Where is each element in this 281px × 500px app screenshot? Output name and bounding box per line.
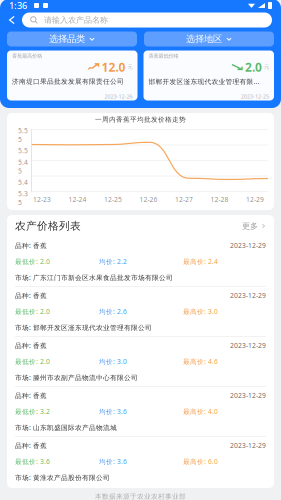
- staticText: 5.55: [18, 126, 28, 144]
- staticText: 均价: 3.6: [99, 407, 127, 416]
- staticText: 均价: 3.0: [99, 357, 127, 366]
- button[interactable]: 品种: 香蕉: [7, 287, 274, 336]
- staticText: 市场: 山东凯盛国际农产品物流城: [15, 423, 117, 432]
- staticText: 选择地区: [186, 33, 222, 45]
- staticText: 最低价: 2.0: [15, 357, 50, 366]
- staticText: 选择品类: [49, 33, 85, 45]
- staticText: 12-25: [104, 195, 122, 204]
- staticText: 邯郸开发区滏东现代农业管理有限公司: [148, 77, 261, 86]
- staticText: 本数据来源于农业农村事业部: [95, 492, 186, 500]
- staticText: 2.0: [245, 59, 262, 75]
- button[interactable]: 香蕉最高价格: [7, 50, 137, 100]
- staticText: 最高价: 6.0: [183, 457, 218, 466]
- staticText: 2023-12-29: [230, 241, 266, 250]
- staticText: 最高价: 3.0: [183, 307, 218, 316]
- button[interactable]: 选择地区: [144, 31, 274, 46]
- staticText: 12-29: [246, 195, 264, 204]
- button[interactable]: 香蕉最低价格: [143, 50, 274, 100]
- staticText: 元: [127, 64, 132, 70]
- staticText: 最高价: 4.0: [183, 407, 218, 416]
- staticText: 市场: 邯郸开发区滏东现代农业管理有限公司: [15, 323, 152, 332]
- staticText: 最低价: 2.0: [15, 257, 50, 266]
- staticText: 最低价: 3.2: [15, 407, 50, 416]
- staticText: 最高价: 4.6: [183, 357, 218, 366]
- staticText: 均价: 3.6: [99, 457, 127, 466]
- staticText: 2023-12-29: [230, 291, 266, 300]
- staticText: 12-26: [139, 195, 157, 204]
- staticText: 2023-12-29: [230, 441, 266, 450]
- button[interactable]: 品种: 香蕉: [7, 337, 274, 386]
- staticText: 最高价: 2.4: [183, 257, 218, 266]
- staticText: 品种: 香蕉: [15, 241, 47, 250]
- staticText: 市场: 广东江门市新会区水果食品批发市场有限公司: [15, 273, 173, 282]
- staticText: 品种: 香蕉: [15, 441, 47, 450]
- staticText: 最低价: 3.6: [15, 457, 50, 466]
- staticText: 品种: 香蕉: [15, 391, 47, 400]
- staticText: 香蕉最低价格: [148, 53, 178, 59]
- staticText: 香蕉最高价格: [12, 53, 42, 59]
- staticText: 12-24: [68, 195, 86, 204]
- button[interactable]: 返回: [2, 12, 22, 27]
- staticText: 12-23: [33, 195, 51, 204]
- staticText: 5.35: [18, 189, 28, 207]
- button[interactable]: 选择品类: [7, 31, 137, 46]
- staticText: 5.5: [18, 146, 28, 155]
- staticText: 一周内香蕉平均批发价格走势: [95, 115, 186, 124]
- staticText: 农产价格列表: [15, 219, 81, 232]
- staticText: 5.4: [18, 178, 28, 187]
- staticText: 元: [264, 64, 269, 70]
- staticText: 品种: 香蕉: [15, 291, 47, 300]
- staticText: 市场: 滕州市农副产品物流中心有限公司: [15, 373, 138, 382]
- staticText: 更多: [242, 221, 258, 231]
- staticText: 1:36: [9, 0, 27, 12]
- staticText: 品种: 香蕉: [15, 341, 47, 350]
- staticText: 12-28: [210, 195, 228, 204]
- staticText: 2023-12-26: [104, 93, 132, 100]
- staticText: 2023-12-29: [230, 341, 266, 350]
- button[interactable]: 品种: 香蕉: [7, 437, 274, 486]
- staticText: 12.0: [101, 59, 125, 75]
- staticText: 12-27: [175, 195, 193, 204]
- staticText: 2023-12-25: [241, 93, 269, 100]
- staticText: 均价: 2.6: [99, 307, 127, 316]
- button[interactable]: 品种: 香蕉: [7, 237, 274, 286]
- button[interactable]: 品种: 香蕉: [7, 387, 274, 436]
- staticText: 济南堤口果品批发发展有限责任公司: [12, 77, 124, 86]
- staticText: 请输入农产品名称: [44, 15, 108, 25]
- staticText: 市场: 黄淮农产品股份有限公司: [15, 473, 110, 482]
- staticText: 最低价: 2.0: [15, 307, 50, 316]
- staticText: 均价: 2.2: [99, 257, 127, 266]
- button[interactable]: 更多: [242, 221, 266, 231]
- staticText: 5.45: [18, 158, 28, 175]
- staticText: 2023-12-29: [230, 391, 266, 400]
